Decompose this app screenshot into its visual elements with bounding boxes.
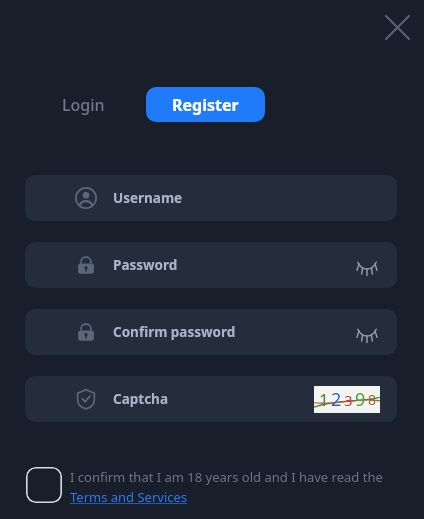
staticText: 1 [319,388,329,411]
button[interactable]: Terms and Services [70,488,188,506]
button[interactable]: Username [25,175,397,221]
staticText: Username [113,189,183,207]
button[interactable]: Password [25,242,397,288]
staticText: 9 [355,387,366,412]
button[interactable]: Register [146,87,265,122]
button[interactable]: Captcha [25,376,397,422]
staticText: Register [172,94,239,116]
button[interactable]: Close [375,5,419,49]
staticText: Captcha [113,390,168,408]
staticText: 2 [331,387,342,412]
button[interactable]: Confirm password [25,309,397,355]
button[interactable]: Refresh captcha [314,386,380,413]
button[interactable]: Show password [349,314,385,350]
staticText: Login [62,94,105,116]
staticText: 3 [344,390,353,410]
staticText: Terms and Services [70,488,188,506]
staticText: 8 [368,390,377,409]
button[interactable]: Login [48,87,119,122]
staticText: Password [113,256,178,274]
button[interactable]: Show password [349,247,385,283]
staticText: Confirm password [113,323,236,341]
button[interactable]: Confirm age and terms [26,467,62,503]
staticText: I confirm that I am 18 years old and I h… [70,468,383,486]
